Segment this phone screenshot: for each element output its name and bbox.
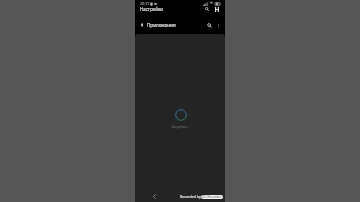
button[interactable]: Navigate up xyxy=(138,21,146,29)
staticText: Загрузка... xyxy=(171,124,190,129)
staticText: 20:37 xyxy=(140,1,150,6)
button[interactable]: Account xyxy=(213,5,221,13)
button[interactable]: Search xyxy=(205,21,213,29)
staticText: Приложения xyxy=(147,22,176,28)
button[interactable]: Search xyxy=(203,5,211,13)
staticText: Recorded by xyxy=(180,194,201,199)
staticText: Настройки xyxy=(140,6,163,12)
staticText: DU Recorder xyxy=(202,195,222,199)
button[interactable]: More options xyxy=(214,21,222,29)
button[interactable]: Back xyxy=(148,190,161,202)
